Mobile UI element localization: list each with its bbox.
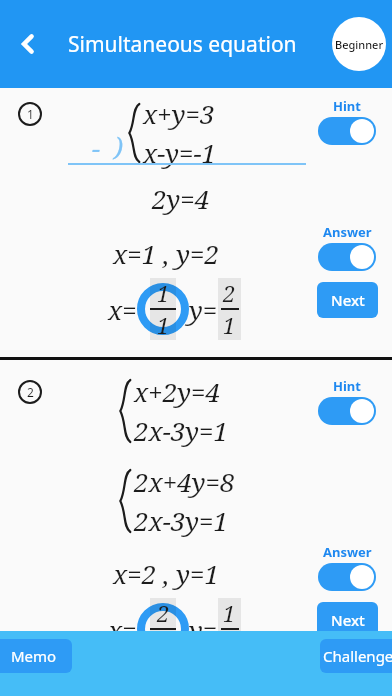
button[interactable]: Next — [317, 282, 378, 318]
button[interactable]: Answer — [316, 222, 378, 272]
staticText: Answer — [323, 223, 372, 241]
staticText: 2x+4y=8 — [134, 464, 235, 499]
staticText: Next — [331, 290, 365, 310]
staticText: x=2 , y=1 — [113, 556, 220, 591]
staticText: y= — [189, 612, 218, 647]
staticText: Simultaneous equation — [68, 30, 297, 59]
staticText: 1 — [223, 598, 236, 628]
button[interactable]: Memo — [0, 639, 72, 673]
button[interactable]: Hint — [316, 96, 378, 146]
button[interactable]: Challenge — [320, 639, 392, 673]
staticText: 2 — [223, 278, 236, 308]
staticText: 2 — [27, 384, 34, 400]
button[interactable]: Hint — [316, 376, 378, 426]
staticText: x=1 , y=2 — [113, 236, 220, 271]
button[interactable]: Beginner — [332, 17, 386, 71]
staticText: Hint — [333, 377, 361, 395]
staticText: 1 — [223, 630, 236, 660]
staticText: 1 — [157, 630, 170, 660]
staticText: 1 — [223, 310, 236, 340]
staticText: Memo — [11, 646, 57, 666]
staticText: y= — [189, 292, 218, 327]
staticText: x+2y=4 — [134, 374, 221, 409]
staticText: Challenge — [323, 646, 392, 666]
staticText: Hint — [333, 97, 361, 115]
staticText: x+y=3 — [143, 96, 215, 131]
staticText: Next — [331, 610, 365, 630]
staticText: ) — [114, 128, 123, 163]
staticText: 1 — [27, 106, 34, 122]
staticText: x−y=−1 — [143, 135, 217, 170]
staticText: Beginner — [335, 37, 384, 52]
button[interactable]: Back — [6, 22, 50, 66]
staticText: − — [92, 130, 101, 165]
staticText: 2 — [157, 598, 170, 628]
button[interactable]: Next — [317, 602, 378, 638]
staticText: 2x−3y=1 — [134, 503, 229, 538]
staticText: 1 — [157, 310, 170, 340]
staticText: x= — [108, 292, 137, 327]
staticText: 1 — [157, 278, 170, 308]
staticText: 2x−3y=1 — [134, 413, 229, 448]
staticText: 2y=4 — [152, 181, 210, 216]
button[interactable]: Answer — [316, 542, 378, 592]
staticText: Answer — [323, 543, 372, 561]
staticText: x= — [108, 612, 137, 647]
